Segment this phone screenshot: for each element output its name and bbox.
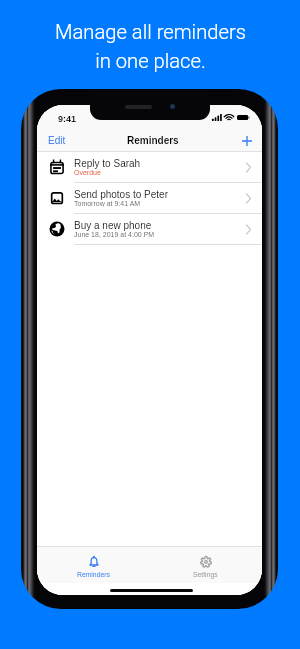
staticText: Reminders [127,135,179,146]
staticText: Send photos to Peter [74,189,168,200]
button[interactable]: Buy a new phone [37,214,262,245]
staticText: June 18, 2019 at 4:00 PM [74,231,155,239]
button[interactable]: Settings [179,547,232,582]
button[interactable]: Send photos to Peter [37,183,262,214]
staticText: Settings [193,571,218,579]
staticText: Overdue [74,169,101,177]
button[interactable]: Edit [37,132,77,149]
staticText: Reply to Sarah [74,158,141,169]
staticText: 9:41 [58,114,77,124]
button[interactable]: Reply to Sarah [37,152,262,183]
staticText: Reminders [77,571,110,579]
staticText: Edit [48,135,66,146]
button[interactable]: Add reminder [232,133,262,149]
staticText: Manage all reminders in one place. [55,20,246,72]
staticText: Buy a new phone [74,220,152,231]
button[interactable]: Reminders [63,547,124,582]
staticText: Tomorrow at 9:41 AM [74,200,141,208]
